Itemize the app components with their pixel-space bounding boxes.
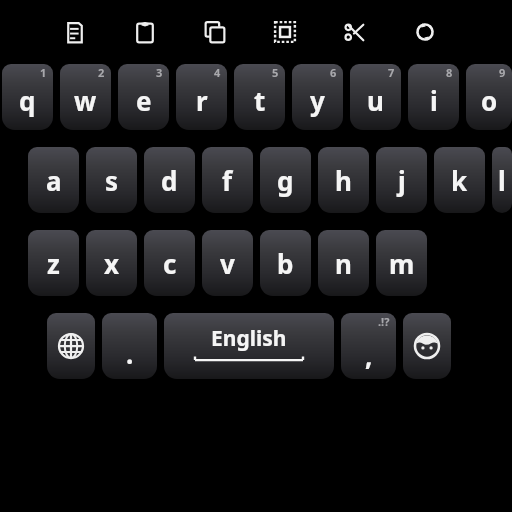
staticText: q: [19, 83, 36, 118]
staticText: 3: [156, 65, 163, 80]
button[interactable]: m: [376, 230, 427, 296]
staticText: r: [196, 83, 208, 118]
staticText: v: [220, 246, 235, 281]
staticText: .: [126, 336, 134, 371]
button[interactable]: Clipboard: [110, 0, 180, 64]
button[interactable]: 2: [60, 64, 111, 130]
staticText: y: [310, 83, 325, 118]
staticText: k: [451, 163, 468, 198]
button[interactable]: 8: [408, 64, 459, 130]
button[interactable]: f: [202, 147, 253, 213]
staticText: x: [104, 246, 120, 281]
button[interactable]: 4: [176, 64, 227, 130]
button[interactable]: Space, English: [164, 313, 334, 379]
button[interactable]: j: [376, 147, 427, 213]
staticText: o: [481, 83, 498, 118]
staticText: h: [335, 163, 352, 198]
button[interactable]: Cut: [320, 0, 390, 64]
staticText: t: [254, 83, 266, 118]
staticText: f: [222, 163, 233, 198]
button[interactable]: 1: [2, 64, 53, 130]
staticText: 8: [446, 65, 453, 80]
button[interactable]: s: [86, 147, 137, 213]
button[interactable]: Change keyboard language: [47, 313, 95, 379]
staticText: .!?: [378, 314, 390, 329]
button[interactable]: 5: [234, 64, 285, 130]
button[interactable]: z: [28, 230, 79, 296]
button[interactable]: .: [102, 313, 157, 379]
staticText: 7: [388, 65, 395, 80]
button[interactable]: Copy: [180, 0, 250, 64]
staticText: 1: [40, 65, 47, 80]
staticText: English: [211, 324, 287, 353]
staticText: c: [163, 246, 177, 281]
button[interactable]: l: [492, 147, 512, 213]
button[interactable]: Paste as plain text: [40, 0, 110, 64]
staticText: l: [498, 163, 506, 198]
staticText: i: [430, 83, 438, 118]
button[interactable]: a: [28, 147, 79, 213]
button[interactable]: g: [260, 147, 311, 213]
staticText: z: [47, 246, 60, 281]
staticText: 4: [214, 65, 221, 80]
button[interactable]: Emoji: [403, 313, 451, 379]
button[interactable]: 7: [350, 64, 401, 130]
button[interactable]: d: [144, 147, 195, 213]
button[interactable]: Redo: [390, 0, 460, 64]
button[interactable]: c: [144, 230, 195, 296]
staticText: 6: [330, 65, 337, 80]
button[interactable]: 3: [118, 64, 169, 130]
staticText: m: [389, 246, 415, 281]
staticText: d: [161, 163, 178, 198]
staticText: n: [335, 246, 352, 281]
staticText: e: [136, 83, 152, 118]
staticText: a: [46, 163, 62, 198]
staticText: 5: [272, 65, 279, 80]
staticText: 2: [98, 65, 105, 80]
button[interactable]: b: [260, 230, 311, 296]
staticText: j: [398, 163, 406, 198]
button[interactable]: v: [202, 230, 253, 296]
button[interactable]: n: [318, 230, 369, 296]
button[interactable]: h: [318, 147, 369, 213]
staticText: s: [105, 163, 119, 198]
staticText: b: [277, 246, 294, 281]
button[interactable]: x: [86, 230, 137, 296]
button[interactable]: Select all: [250, 0, 320, 64]
staticText: w: [74, 83, 97, 118]
button[interactable]: .!?: [341, 313, 396, 379]
button[interactable]: 9: [466, 64, 512, 130]
staticText: ,: [365, 338, 373, 373]
button[interactable]: 6: [292, 64, 343, 130]
staticText: 9: [499, 65, 506, 80]
staticText: u: [367, 83, 384, 118]
staticText: g: [277, 163, 294, 198]
button[interactable]: k: [434, 147, 485, 213]
